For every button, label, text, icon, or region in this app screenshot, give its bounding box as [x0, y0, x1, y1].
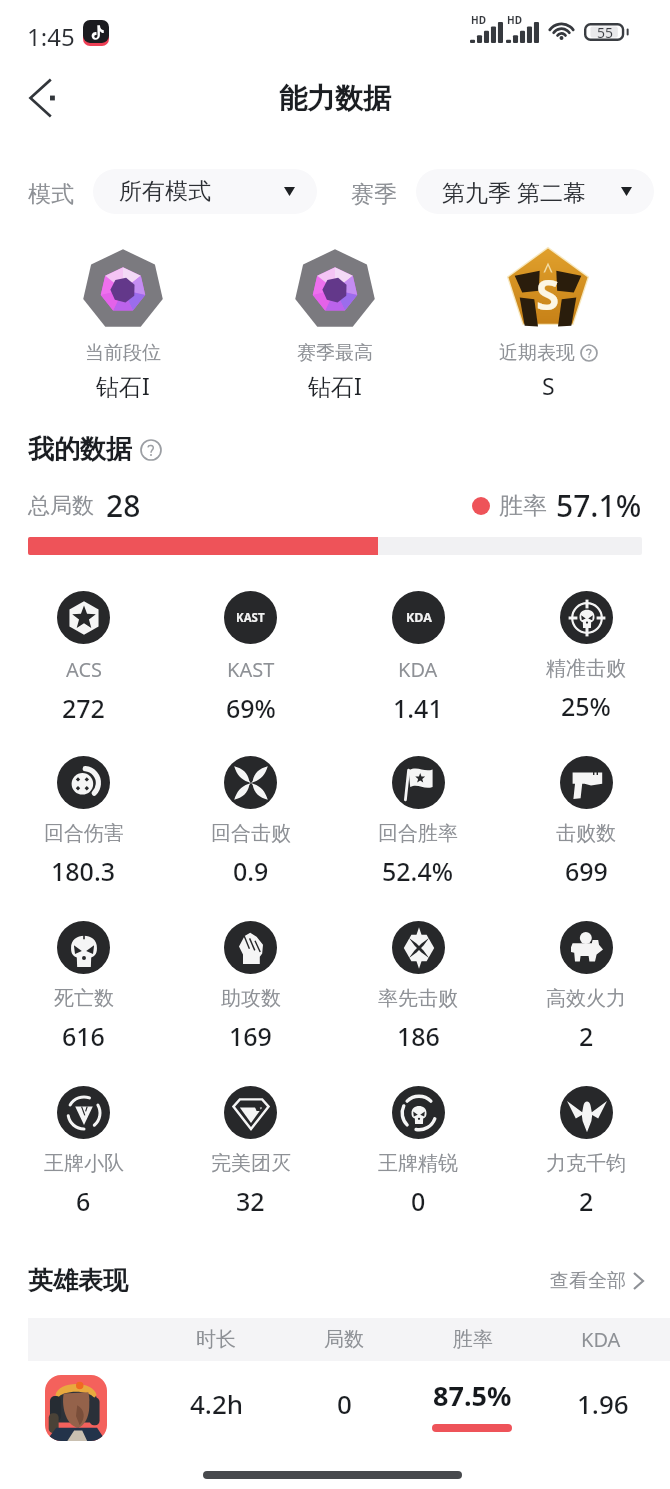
- staticText: 169: [229, 1019, 272, 1053]
- staticText: 回合胜率: [378, 821, 458, 846]
- staticText: KDA: [406, 609, 432, 626]
- staticText: 186: [397, 1019, 440, 1053]
- staticText: 回合击败: [211, 821, 291, 846]
- staticText: 王牌小队: [44, 1151, 124, 1176]
- button[interactable]: 高效火力: [502, 921, 670, 1053]
- staticText: 局数: [324, 1327, 364, 1352]
- staticText: 查看全部: [550, 1269, 626, 1293]
- button[interactable]: 精准击败: [502, 591, 670, 723]
- button[interactable]: 第九季 第二幕: [416, 169, 654, 214]
- staticText: 回合伤害: [44, 821, 124, 846]
- button[interactable]: 当前段位: [23, 243, 223, 401]
- staticText: 死亡数: [54, 986, 114, 1011]
- staticText: 王牌精锐: [378, 1151, 458, 1176]
- staticText: 1.96: [577, 1386, 629, 1421]
- staticText: 完美团灭: [211, 1151, 291, 1176]
- staticText: HD: [507, 13, 522, 27]
- button[interactable]: 击败数: [502, 756, 670, 888]
- staticText: 57.1%: [556, 485, 642, 526]
- staticText: 所有模式: [119, 177, 211, 206]
- staticText: 0: [337, 1386, 352, 1421]
- button[interactable]: 4.2h: [0, 1361, 670, 1453]
- staticText: 钻石I: [308, 370, 362, 401]
- staticText: 能力数据: [279, 81, 391, 116]
- button[interactable]: 助攻数: [167, 921, 334, 1053]
- button[interactable]: 查看全部: [550, 1269, 644, 1293]
- staticText: 699: [565, 854, 608, 888]
- staticText: 25%: [561, 689, 611, 723]
- staticText: 时长: [196, 1327, 236, 1352]
- button[interactable]: 所有模式: [93, 169, 317, 214]
- staticText: 力克千钧: [546, 1151, 626, 1176]
- staticText: 胜率: [453, 1327, 493, 1352]
- button[interactable]: ACS: [0, 591, 167, 725]
- staticText: 助攻数: [221, 986, 281, 1011]
- staticText: 赛季最高: [297, 341, 373, 365]
- staticText: 击败数: [556, 821, 616, 846]
- button[interactable]: 王牌小队: [0, 1086, 167, 1218]
- staticText: 总局数: [28, 492, 94, 520]
- staticText: 1:45: [27, 20, 75, 53]
- button[interactable]: 力克千钧: [502, 1086, 670, 1218]
- button[interactable]: 王牌精锐: [334, 1086, 502, 1218]
- staticText: 2: [579, 1184, 594, 1218]
- staticText: 英雄表现: [28, 1265, 128, 1296]
- staticText: 272: [62, 691, 105, 725]
- button[interactable]: KDA: [334, 591, 502, 725]
- staticText: 0: [411, 1184, 426, 1218]
- staticText: 52.4%: [382, 854, 454, 888]
- staticText: ACS: [66, 656, 102, 683]
- staticText: 赛季: [351, 180, 397, 209]
- staticText: HD: [471, 13, 486, 27]
- button[interactable]: S: [448, 243, 648, 401]
- staticText: 0.9: [233, 854, 269, 888]
- staticText: 4.2h: [190, 1386, 244, 1421]
- staticText: 616: [62, 1019, 105, 1053]
- staticText: KAST: [227, 656, 275, 683]
- staticText: 胜率: [499, 491, 547, 521]
- staticText: 钻石I: [96, 370, 150, 401]
- staticText: 当前段位: [85, 341, 161, 365]
- staticText: 28: [106, 485, 141, 526]
- button[interactable]: 回合击败: [167, 756, 334, 888]
- button[interactable]: 回合胜率: [334, 756, 502, 888]
- staticText: KDA: [581, 1326, 621, 1353]
- staticText: 我的数据: [28, 433, 132, 466]
- staticText: 6: [76, 1184, 91, 1218]
- button[interactable]: 死亡数: [0, 921, 167, 1053]
- button[interactable]: 回合伤害: [0, 756, 167, 888]
- staticText: 近期表现: [499, 341, 575, 365]
- staticText: 180.3: [51, 854, 116, 888]
- staticText: 69%: [226, 691, 276, 725]
- staticText: 1.41: [393, 691, 443, 725]
- staticText: 2: [579, 1019, 594, 1053]
- staticText: KAST: [236, 610, 265, 626]
- staticText: 87.5%: [433, 1377, 512, 1414]
- staticText: 高效火力: [546, 986, 626, 1011]
- button[interactable]: KAST: [167, 591, 334, 725]
- staticText: 第九季 第二幕: [442, 176, 586, 207]
- button[interactable]: 完美团灭: [167, 1086, 334, 1218]
- staticText: 精准击败: [546, 656, 626, 681]
- staticText: 模式: [28, 180, 74, 209]
- staticText: 55: [597, 23, 614, 41]
- staticText: KDA: [398, 656, 438, 683]
- staticText: S: [542, 370, 555, 401]
- button[interactable]: 赛季最高: [235, 243, 435, 401]
- button[interactable]: 率先击败: [334, 921, 502, 1053]
- staticText: 率先击败: [378, 986, 458, 1011]
- staticText: S: [536, 265, 560, 322]
- staticText: 32: [236, 1184, 265, 1218]
- button[interactable]: Back: [12, 69, 70, 127]
